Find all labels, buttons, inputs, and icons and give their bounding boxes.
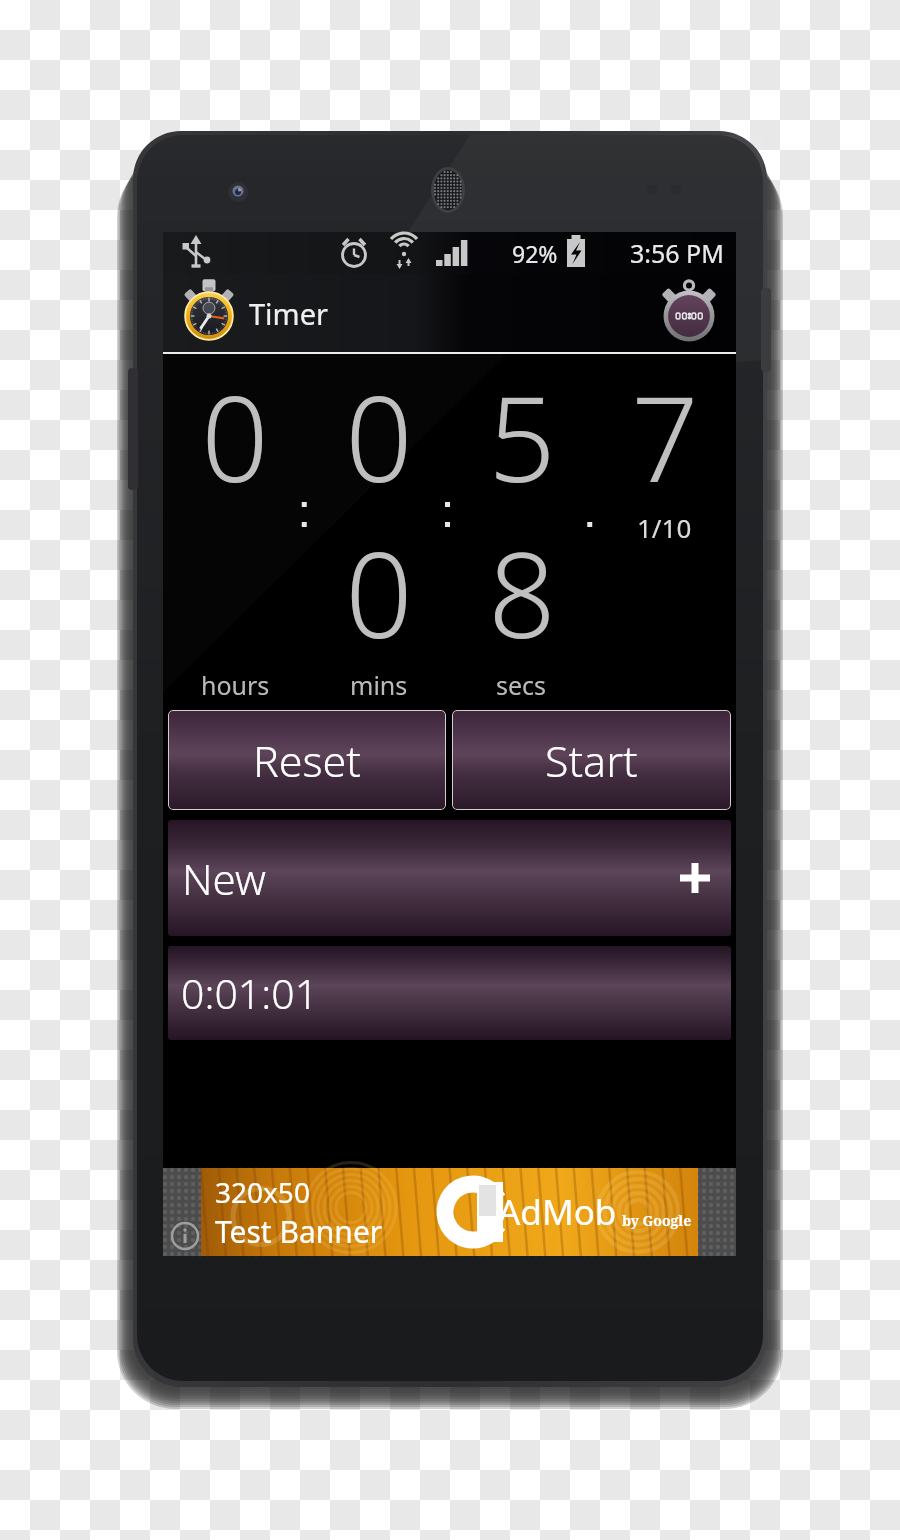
button[interactable]: 7 <box>593 356 736 508</box>
button[interactable]: Advertisement banner <box>163 1168 736 1256</box>
staticText: Timer <box>249 294 329 333</box>
staticText: 1/10 <box>637 510 692 545</box>
staticText: hours <box>201 668 270 702</box>
staticText: 92% <box>512 238 558 269</box>
staticText: Start <box>545 731 638 790</box>
button[interactable]: 8 <box>450 512 593 664</box>
staticText: 3:56 PM <box>630 236 724 270</box>
staticText: New <box>182 850 266 907</box>
button[interactable]: New <box>168 820 731 936</box>
staticText: by Google <box>622 1211 692 1230</box>
button[interactable]: Reset <box>168 710 446 810</box>
staticText: Test Banner <box>215 1211 383 1252</box>
staticText: mins <box>350 668 408 702</box>
button[interactable]: Start <box>452 710 731 810</box>
button[interactable]: 0:01:01 <box>168 946 731 1040</box>
staticText: 320x50 <box>215 1173 310 1211</box>
staticText: 0 <box>201 356 269 508</box>
staticText: 0 <box>345 356 413 508</box>
button[interactable]: 5 <box>450 356 593 508</box>
staticText: AdMob <box>498 1188 617 1236</box>
button[interactable]: 0 <box>307 512 450 664</box>
button[interactable]: 0 <box>163 356 307 508</box>
staticText: 8 <box>488 512 556 664</box>
staticText: Reset <box>253 731 361 790</box>
button[interactable]: 0 <box>307 356 450 508</box>
staticText: secs <box>496 668 547 702</box>
staticText: 0 <box>345 512 413 664</box>
staticText: 0:01:01 <box>181 965 319 1021</box>
staticText: 5 <box>488 356 556 508</box>
staticText: 7 <box>631 356 699 508</box>
button[interactable]: Stopwatch <box>652 276 726 350</box>
button[interactable]: Timer <box>175 279 243 347</box>
